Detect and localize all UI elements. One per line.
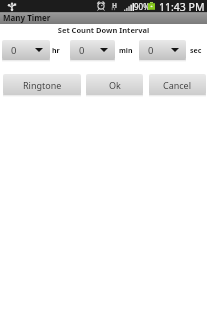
staticText: Ringtone <box>23 79 62 91</box>
staticText: Cancel <box>163 79 192 91</box>
button[interactable]: Cancel <box>149 74 206 95</box>
staticText: Set Count Down Interval <box>0 25 207 35</box>
staticText: 11:43 PM <box>159 0 205 12</box>
staticText: 0 <box>148 44 154 57</box>
staticText: hr <box>52 46 60 56</box>
staticText: sec <box>190 46 202 56</box>
button[interactable]: Ok <box>86 74 143 95</box>
staticText: 90% <box>134 1 150 12</box>
button[interactable]: Select value <box>70 40 115 60</box>
staticText: 0 <box>79 44 85 57</box>
button[interactable]: Ringtone <box>3 74 81 95</box>
staticText: Ok <box>109 79 121 91</box>
button[interactable]: Select value <box>139 40 186 60</box>
staticText: H <box>112 1 117 10</box>
staticText: Many Timer <box>3 12 51 23</box>
staticText: 0 <box>11 44 17 57</box>
button[interactable]: Select value <box>2 40 50 60</box>
staticText: min <box>119 46 133 56</box>
